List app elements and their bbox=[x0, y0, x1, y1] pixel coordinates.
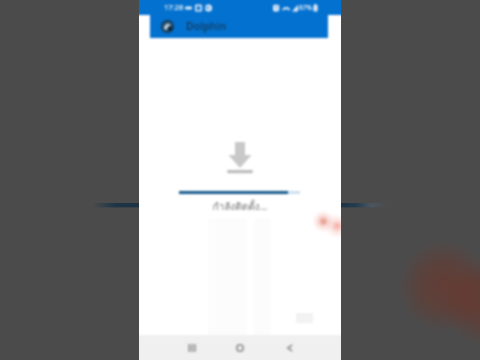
button[interactable]: Home bbox=[231, 335, 249, 360]
staticText: กำลังติดตั้ง... bbox=[212, 199, 268, 215]
button[interactable]: Dolphin bbox=[150, 15, 328, 38]
button[interactable]: Back bbox=[281, 335, 299, 360]
button[interactable]: Recent apps bbox=[183, 335, 201, 360]
staticText: 17:28 bbox=[164, 2, 184, 12]
staticText: Dolphin bbox=[186, 19, 227, 33]
staticText: 67% bbox=[299, 3, 312, 12]
